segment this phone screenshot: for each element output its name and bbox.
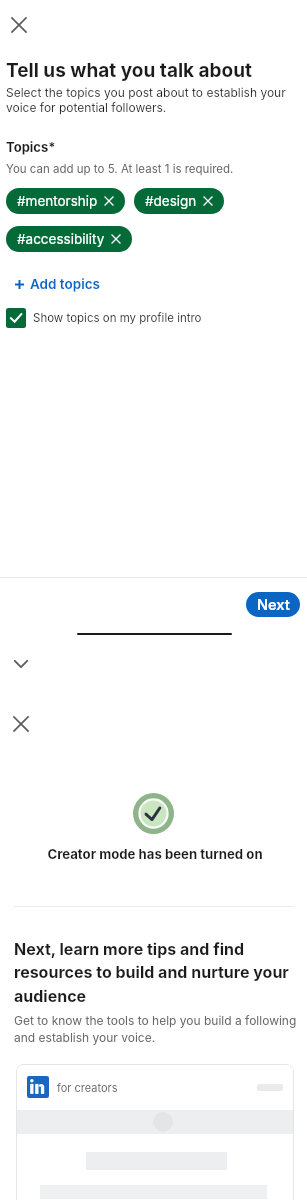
button[interactable]: #accessibility [6,226,132,252]
staticText: Add topics [30,276,100,292]
staticText: for creators [57,1081,118,1094]
staticText: #design [145,193,197,209]
staticText: Show topics on my profile intro [33,311,202,325]
button[interactable]: Add topics [15,272,100,296]
button[interactable]: #design [134,188,224,214]
button[interactable]: Collapse [7,650,35,678]
button[interactable]: Close [5,11,33,39]
button[interactable]: Next [246,592,300,617]
staticText: Topics* [6,139,56,155]
button[interactable]: for creators [16,1064,294,1200]
staticText: #mentorship [17,193,98,209]
staticText: Get to know the tools to help you build … [14,1013,306,1045]
staticText: Creator mode has been turned on [46,846,264,862]
staticText: Tell us what you talk about [6,59,253,82]
staticText: Next, learn more tips and find resources… [14,939,296,1006]
staticText: #accessibility [17,231,105,247]
staticText: You can add up to 5. At least 1 is requi… [6,162,234,176]
button[interactable]: Close [7,710,35,738]
staticText: Select the topics you post about to esta… [6,85,291,115]
button[interactable]: Show topics on my profile intro [6,307,202,328]
button[interactable]: #mentorship [6,188,125,214]
staticText: Next [257,596,290,614]
